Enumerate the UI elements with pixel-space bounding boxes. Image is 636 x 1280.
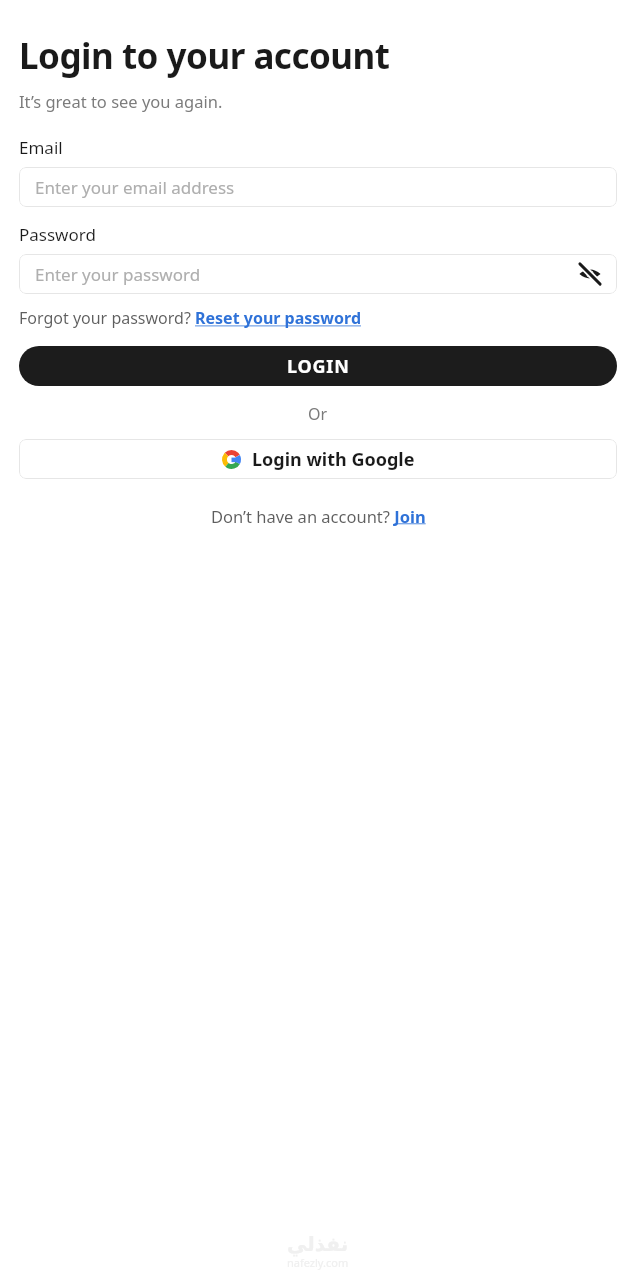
button[interactable]: Show password: [577, 261, 603, 287]
staticText: Password: [19, 223, 96, 246]
button[interactable]: LOGIN: [19, 346, 617, 386]
staticText: نفذلي: [287, 1232, 349, 1255]
staticText: Enter your password: [35, 263, 201, 286]
staticText: Enter your email address: [35, 176, 235, 199]
staticText: nafezly.com: [287, 1255, 349, 1270]
button[interactable]: Enter your email address: [19, 167, 617, 207]
button[interactable]: Enter your password: [19, 254, 617, 294]
button[interactable]: Forgot your password? Reset your passwor…: [19, 307, 362, 329]
staticText: LOGIN: [287, 354, 350, 379]
staticText: Forgot your password? Reset your passwor…: [19, 307, 362, 329]
button[interactable]: Login with Google: [19, 439, 617, 479]
staticText: It’s great to see you again.: [19, 90, 223, 112]
staticText: Or: [308, 403, 328, 425]
staticText: Don’t have an account? Join: [211, 505, 426, 527]
button[interactable]: Don’t have an account? Join: [211, 505, 426, 527]
staticText: Email: [19, 136, 63, 159]
staticText: Login to your account: [19, 32, 390, 80]
staticText: Login with Google: [252, 447, 415, 472]
